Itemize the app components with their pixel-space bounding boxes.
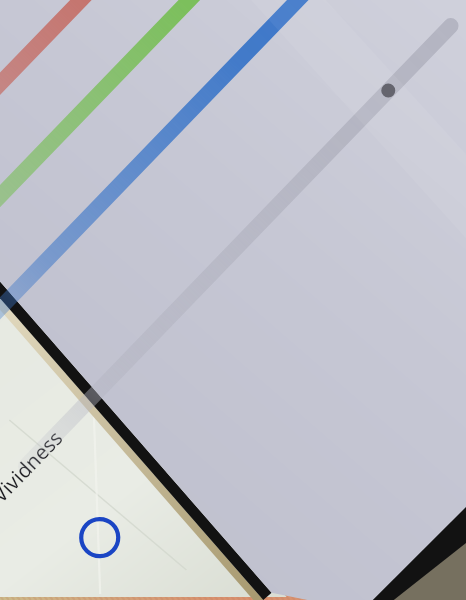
- button[interactable]: White balance colour settings: [0, 0, 466, 600]
